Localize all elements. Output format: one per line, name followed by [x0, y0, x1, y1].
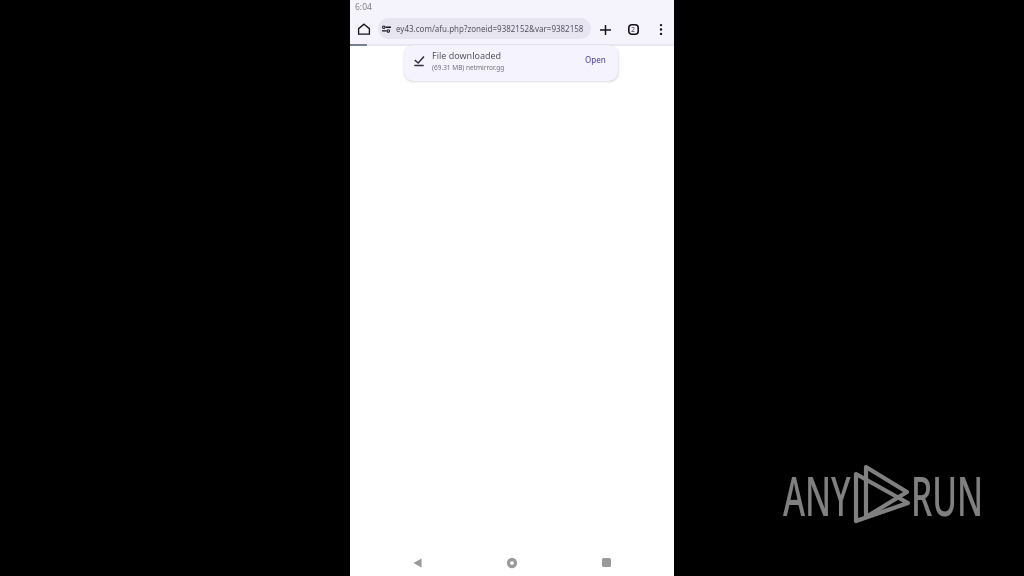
- staticText: File downloaded: [432, 49, 502, 61]
- staticText: ANY: [783, 457, 851, 532]
- staticText: RUN: [911, 457, 984, 532]
- staticText: Open: [585, 54, 606, 65]
- button[interactable]: ey43.com/afu.php?zoneid=9382152&var=9382…: [378, 18, 591, 39]
- staticText: 6:04: [355, 1, 372, 13]
- button[interactable]: File downloaded: [404, 45, 618, 81]
- button[interactable]: Home: [497, 548, 526, 576]
- button[interactable]: Recent apps: [592, 548, 621, 576]
- button[interactable]: Open: [582, 51, 609, 68]
- staticText: ey43.com/afu.php?zoneid=9382152&var=9382…: [396, 23, 584, 34]
- button[interactable]: New tab: [595, 19, 616, 40]
- button[interactable]: Switch tabs: [623, 19, 644, 40]
- button[interactable]: Back: [403, 548, 432, 576]
- button[interactable]: More options: [650, 19, 671, 40]
- staticText: (69.31 MB) netmirror.gg: [432, 63, 505, 72]
- button[interactable]: Home: [357, 22, 371, 36]
- staticText: 2: [631, 25, 636, 35]
